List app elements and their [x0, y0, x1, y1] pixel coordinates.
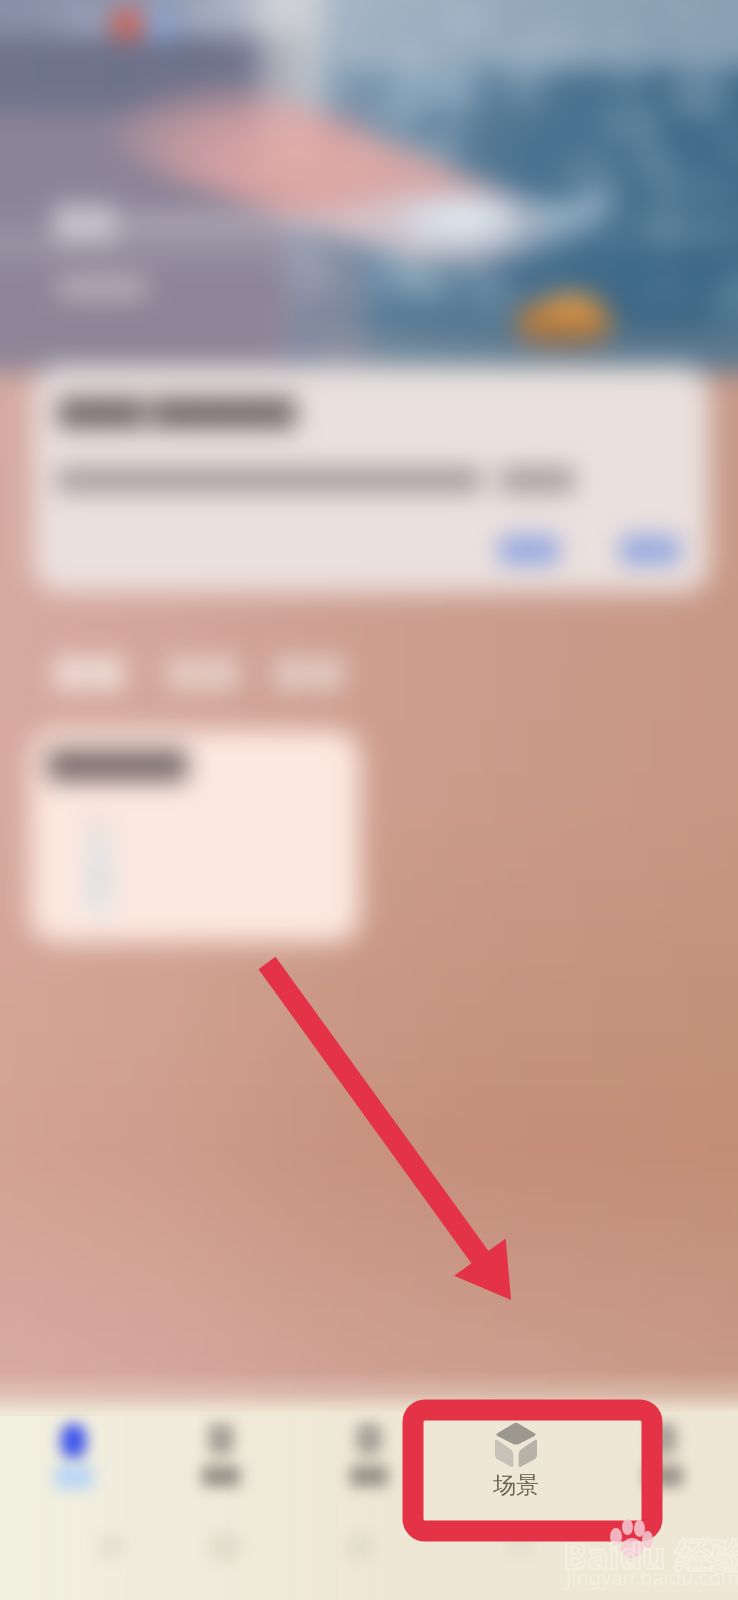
button[interactable]: Mall	[294, 1470, 441, 1600]
button[interactable]: Profile	[591, 1470, 738, 1600]
button[interactable]: Home	[0, 1470, 147, 1600]
button[interactable]: 场景	[466, 1414, 566, 1526]
staticText: 场景	[493, 1471, 539, 1500]
staticText: Baidu 经验	[563, 1531, 738, 1580]
staticText: jingyan.baidu.com	[566, 1564, 738, 1591]
button[interactable]: Devices	[147, 1470, 294, 1600]
